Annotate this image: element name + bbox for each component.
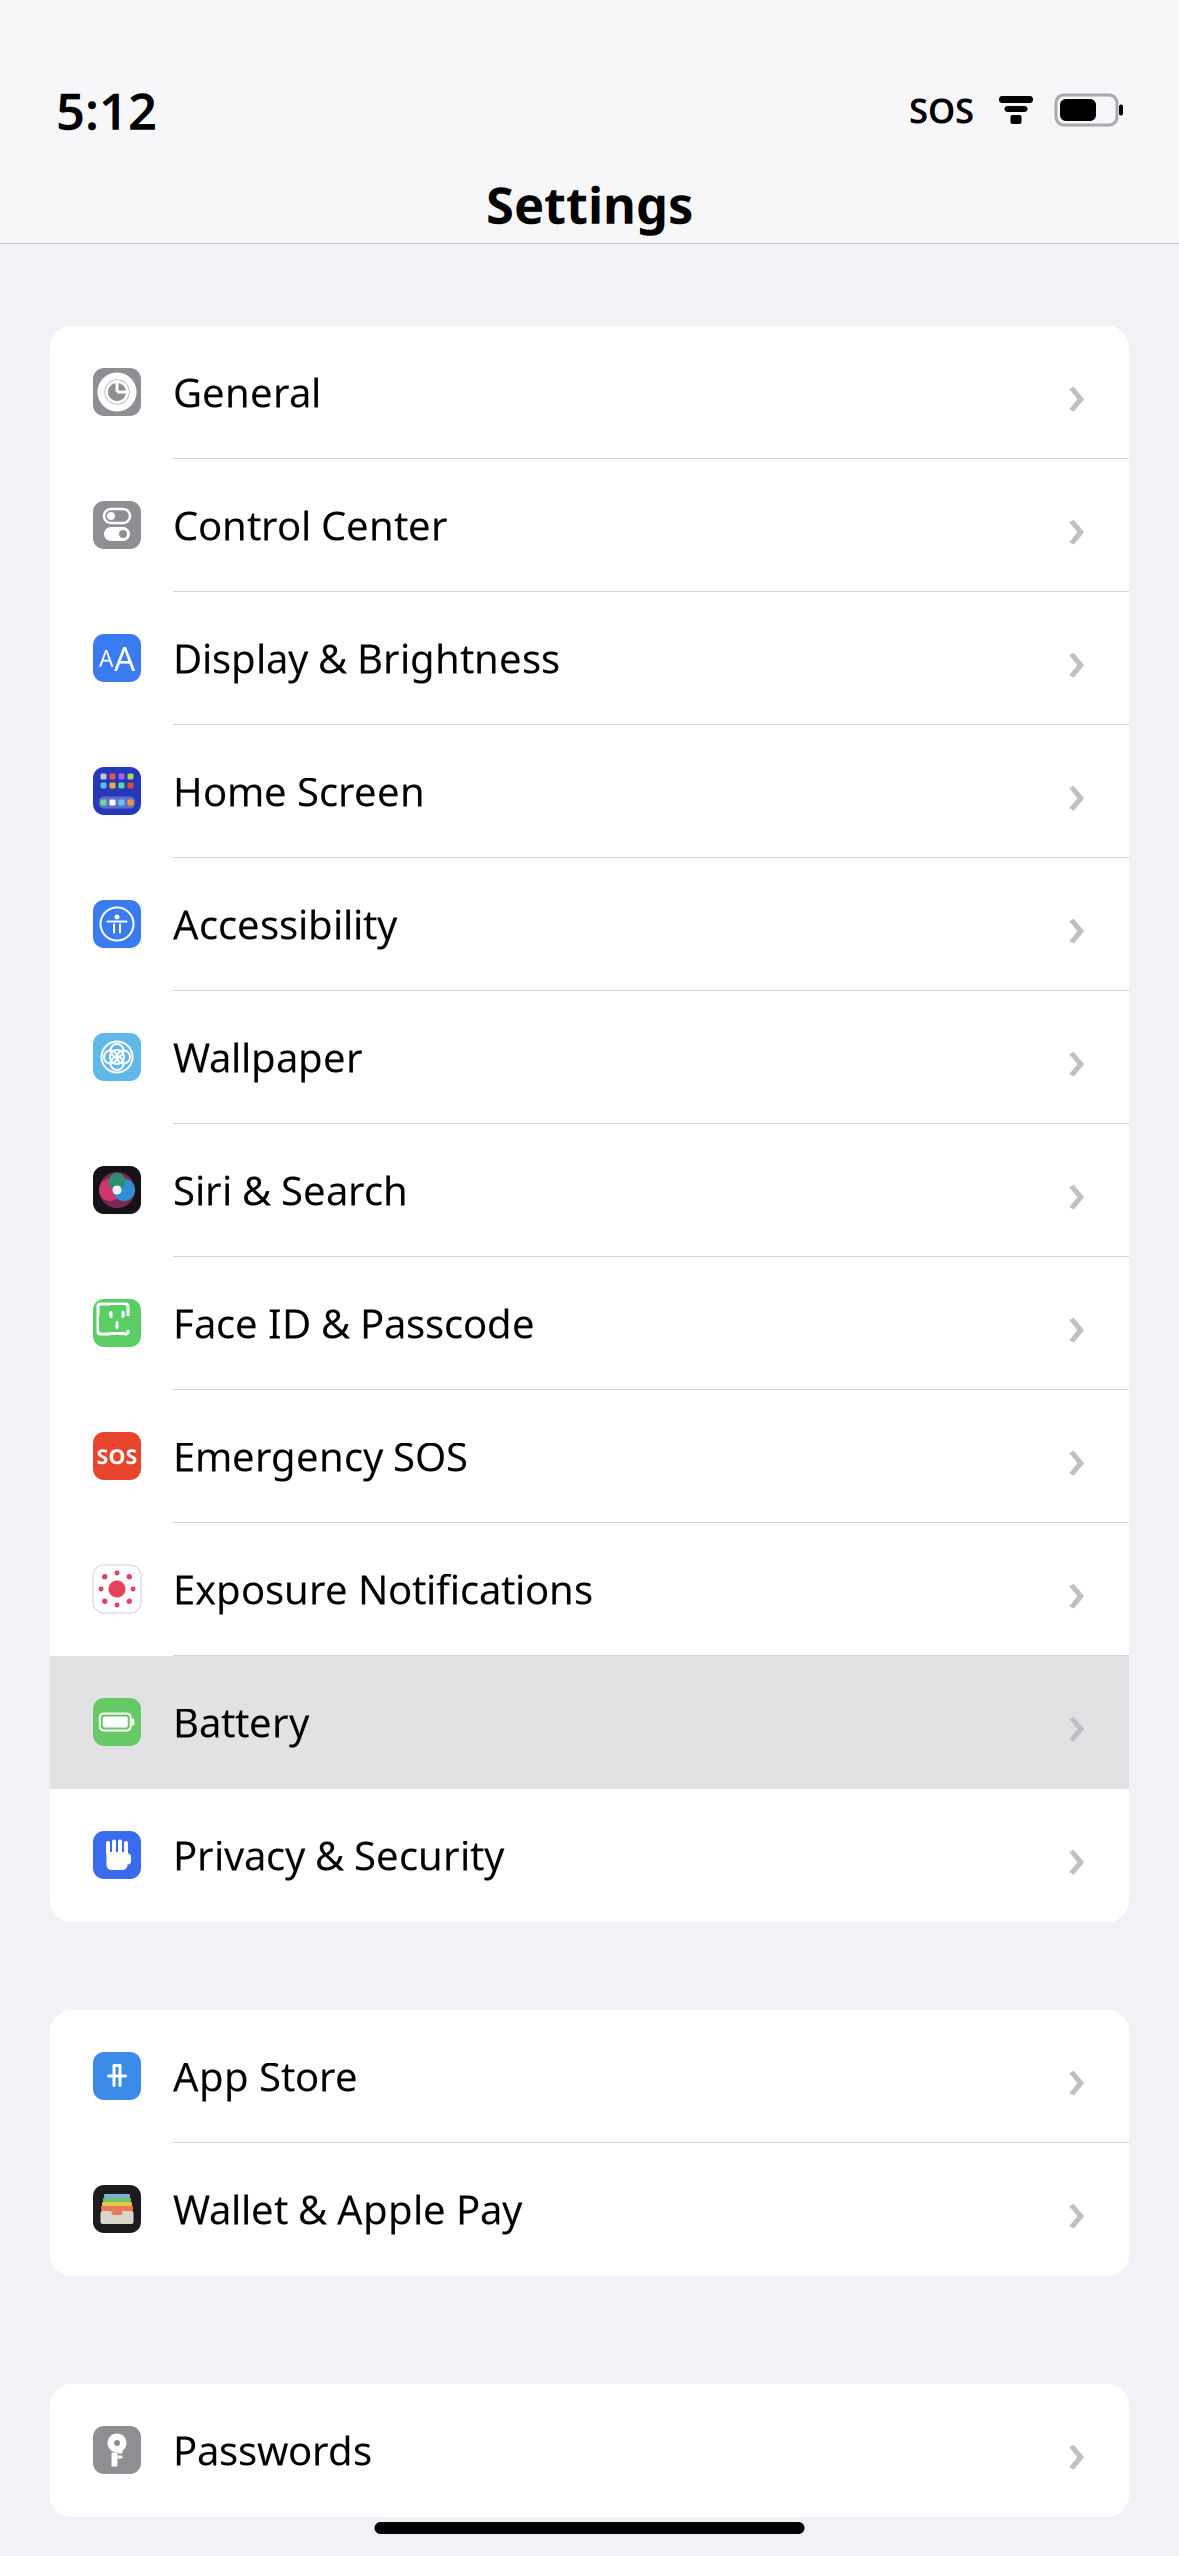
staticText: › <box>1067 1284 1086 1362</box>
button[interactable]: General <box>50 326 1129 459</box>
staticText: Home Screen <box>173 764 425 817</box>
button[interactable]: Wallet & Apple Pay <box>50 2143 1129 2276</box>
staticText: Passwords <box>173 2423 372 2476</box>
staticText: Wallet & Apple Pay <box>173 2182 522 2235</box>
button[interactable]: Battery <box>50 1656 1129 1789</box>
staticText: SOS <box>96 1442 137 1470</box>
staticText: › <box>1067 1816 1086 1894</box>
staticText: › <box>1067 486 1086 564</box>
staticText: General <box>173 365 321 418</box>
staticText: › <box>1067 1683 1086 1761</box>
staticText: › <box>1067 1018 1086 1096</box>
button[interactable]: Accessibility <box>50 858 1129 991</box>
button[interactable]: SOS <box>50 1390 1129 1523</box>
staticText: Settings <box>486 170 693 238</box>
staticText: › <box>1067 752 1086 830</box>
staticText: Battery <box>173 1695 309 1748</box>
staticText: Face ID & Passcode <box>173 1296 535 1349</box>
staticText: App Store <box>173 2049 358 2102</box>
staticText: Emergency SOS <box>173 1429 468 1482</box>
staticText: › <box>1067 619 1086 697</box>
staticText: Accessibility <box>173 897 397 950</box>
button[interactable]: Exposure Notifications <box>50 1523 1129 1656</box>
button[interactable]: Face ID & Passcode <box>50 1257 1129 1390</box>
staticText: › <box>1067 885 1086 963</box>
button[interactable]: Wallpaper <box>50 991 1129 1124</box>
staticText: › <box>1067 2170 1086 2248</box>
staticText: Privacy & Security <box>173 1828 504 1881</box>
staticText: › <box>1067 2037 1086 2115</box>
staticText: Exposure Notifications <box>173 1562 593 1615</box>
staticText: A <box>114 636 135 680</box>
staticText: › <box>1067 2411 1086 2489</box>
staticText: Wallpaper <box>173 1030 363 1083</box>
button[interactable]: Control Center <box>50 459 1129 592</box>
staticText: › <box>1067 1550 1086 1628</box>
button[interactable]: Passwords <box>50 2384 1129 2517</box>
staticText: › <box>1067 353 1086 431</box>
button[interactable]: A <box>50 592 1129 725</box>
staticText: Siri & Search <box>173 1163 408 1216</box>
staticText: Display & Brightness <box>173 631 560 684</box>
staticText: A <box>99 643 113 673</box>
button[interactable]: App Store <box>50 2010 1129 2143</box>
staticText: Control Center <box>173 498 448 551</box>
staticText: SOS <box>909 87 974 133</box>
button[interactable]: Home Screen <box>50 725 1129 858</box>
staticText: › <box>1067 1151 1086 1229</box>
staticText: › <box>1067 1417 1086 1495</box>
staticText: 5:12 <box>56 76 157 144</box>
button[interactable]: Privacy & Security <box>50 1789 1129 1922</box>
button[interactable]: Siri & Search <box>50 1124 1129 1257</box>
